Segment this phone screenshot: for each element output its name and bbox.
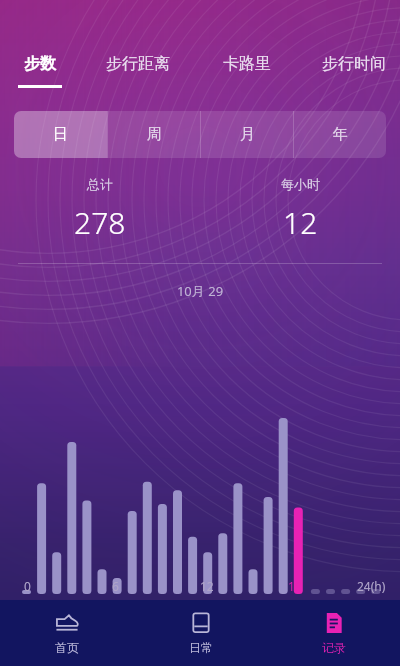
button[interactable]: 步行距离 (94, 54, 182, 88)
staticText: 0 (24, 578, 31, 594)
button[interactable]: 步数 (18, 54, 62, 88)
staticText: 日常 (189, 640, 213, 655)
staticText: 步数 (24, 54, 56, 74)
button[interactable]: 月 (201, 111, 293, 158)
button[interactable]: 首页 (0, 600, 134, 666)
staticText: 10月 29 (0, 282, 400, 300)
staticText: 年 (333, 125, 348, 144)
staticText: 12 (200, 578, 214, 594)
button[interactable]: 日 (14, 111, 107, 158)
staticText: 月 (240, 125, 255, 144)
staticText: 首页 (55, 640, 79, 655)
other: 日常 (189, 611, 213, 635)
staticText: 总计 (87, 176, 113, 192)
button[interactable]: 步行时间 (310, 54, 398, 88)
staticText: 周 (147, 125, 162, 144)
staticText: 6 (112, 578, 119, 594)
staticText: 24(h) (357, 578, 386, 594)
button[interactable]: 周 (108, 111, 200, 158)
staticText: 日 (53, 125, 68, 144)
staticText: 278 (74, 202, 126, 243)
staticText: 卡路里 (223, 54, 271, 74)
other: 记录 (322, 611, 346, 635)
staticText: 记录 (322, 640, 346, 655)
other: 首页 (55, 611, 79, 635)
staticText: 步行距离 (106, 54, 170, 74)
staticText: 12 (283, 202, 318, 243)
button[interactable]: 年 (294, 111, 386, 158)
staticText: 步行时间 (322, 54, 386, 74)
button[interactable]: 日常 (134, 600, 267, 666)
button[interactable]: 记录 (267, 600, 400, 666)
staticText: 每小时 (281, 176, 320, 192)
button[interactable]: 卡路里 (214, 54, 280, 88)
staticText: 18 (288, 578, 302, 594)
